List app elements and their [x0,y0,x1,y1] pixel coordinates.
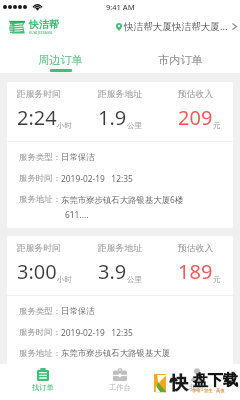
staticText: 快 [170,372,188,395]
staticText: 预估收入 [178,89,214,100]
staticText: 距服务时间 [17,89,61,100]
staticText: 3:00 [17,258,57,285]
staticText: 服务类型： [19,306,61,317]
staticText: 距服务时间 [17,243,61,254]
staticText: 东莞市寮步镇石大路银基大厦 [61,348,171,359]
staticText: 距服务地址 [98,243,142,254]
staticText: 服务地址： [19,194,61,205]
staticText: 盘下载 [193,371,238,390]
staticText: 公里 [127,121,142,130]
button[interactable]: 距服务时间 [7,236,233,382]
staticText: 1.9 [98,104,127,131]
button[interactable]: 快洁帮大厦快洁帮大厦... [115,20,239,33]
staticText: 2019-02-19 12:35 [61,327,133,338]
staticText: 东莞市寮步镇石大路银基大厦6楼 [61,194,184,205]
staticText: 2:24 [17,104,57,131]
staticText: 3.9 [98,258,127,285]
staticText: 快洁帮 [29,18,59,31]
staticText: 找订单 [32,383,54,392]
staticText: 快洁帮大厦快洁帮大厦... [124,20,228,33]
staticText: 学信 · 贸生 · 高值 [192,387,225,393]
staticText: 小时 [57,121,72,130]
staticText: 距服务地址 [98,89,142,100]
staticText: 日常保洁 [61,152,95,163]
staticText: 预估收入 [178,243,214,254]
staticText: 9:41 AM [106,2,135,12]
button[interactable]: 工作台 [81,364,158,400]
staticText: 公里 [127,275,142,284]
staticText: KUAIJIEBANG [29,31,53,35]
button[interactable]: 找订单 [5,364,81,400]
button[interactable]: 我的 [158,364,235,400]
staticText: 市内订单 [158,53,203,67]
button[interactable]: 距服务时间 [7,82,233,228]
staticText: 服务时间： [19,327,61,338]
button[interactable]: 周边订单 [0,38,120,73]
staticText: 2019-02-19 12:35 [61,173,133,184]
staticText: 209 [178,104,213,131]
button[interactable]: 市内订单 [120,38,240,73]
staticText: 日常保洁 [61,306,95,317]
staticText: 服务类型： [19,152,61,163]
staticText: 小时 [57,275,72,284]
staticText: 服务地址： [19,348,61,359]
staticText: 服务时间： [19,173,61,184]
staticText: 工作台 [109,383,131,392]
staticText: 189 [178,258,213,285]
staticText: 我的 [189,383,204,392]
staticText: 611.... [65,209,89,220]
staticText: 周边订单 [38,53,83,67]
staticText: 元 [213,121,221,130]
staticText: 元 [213,275,221,284]
